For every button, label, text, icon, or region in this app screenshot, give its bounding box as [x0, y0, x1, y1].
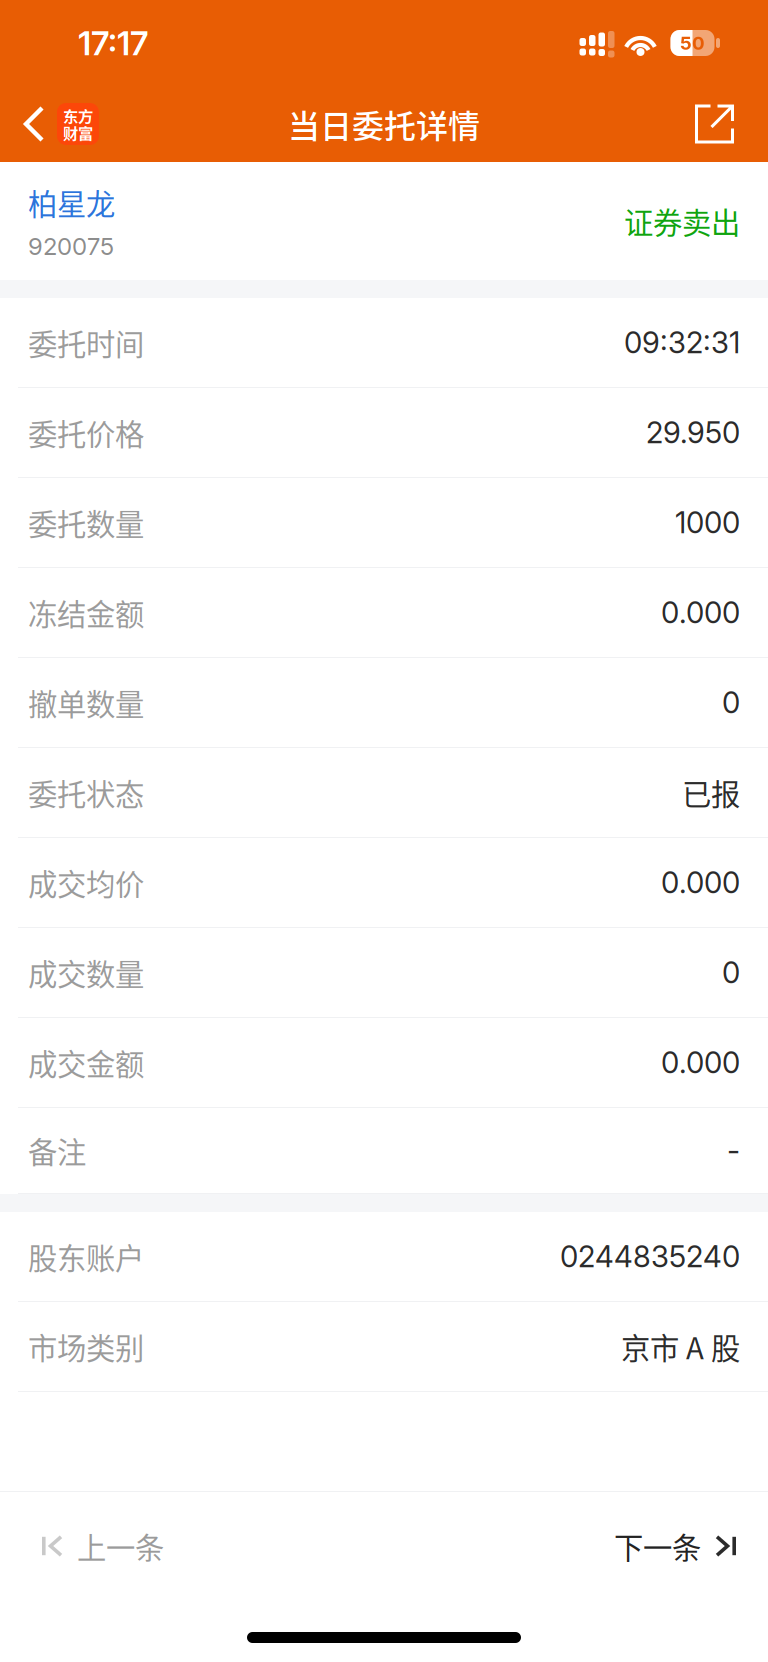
staticText: 柏星龙	[28, 181, 115, 224]
staticText: 1000	[675, 505, 740, 540]
staticText: -	[727, 1133, 740, 1168]
staticText: 备注	[28, 1129, 86, 1172]
staticText: 0	[722, 685, 740, 720]
staticText: 东方	[63, 104, 93, 127]
button[interactable]: 上一条	[0, 1492, 188, 1600]
staticText: 委托数量	[28, 501, 144, 544]
staticText: 下一条	[614, 1525, 701, 1567]
staticText: 委托状态	[28, 771, 144, 814]
staticText: 上一条	[77, 1525, 164, 1567]
staticText: 0.000	[661, 1045, 740, 1080]
staticText: 成交均价	[28, 861, 144, 904]
staticText: 股东账户	[28, 1235, 144, 1278]
staticText: 50	[680, 32, 705, 54]
staticText: 证券卖出	[624, 200, 740, 242]
staticText: 17:17	[78, 23, 148, 63]
button[interactable]: 东方	[0, 88, 113, 160]
staticText: 0	[722, 955, 740, 990]
staticText: 京市 A 股	[621, 1325, 740, 1368]
staticText: 0.000	[661, 595, 740, 630]
staticText: 财富	[63, 121, 93, 144]
staticText: 市场类别	[28, 1325, 144, 1368]
staticText: 委托时间	[28, 321, 144, 364]
staticText: 29.950	[646, 415, 740, 450]
button[interactable]: 下一条	[590, 1492, 768, 1600]
staticText: 0244835240	[560, 1239, 740, 1274]
staticText: 成交金额	[28, 1041, 144, 1084]
staticText: 0.000	[661, 865, 740, 900]
staticText: 当日委托详情	[288, 101, 480, 147]
staticText: 成交数量	[28, 951, 144, 994]
staticText: 09:32:31	[624, 325, 740, 360]
staticText: 冻结金额	[28, 591, 144, 634]
staticText: 920075	[28, 232, 114, 261]
staticText: 委托价格	[28, 411, 144, 454]
staticText: 已报	[682, 771, 740, 814]
staticText: 撤单数量	[28, 681, 144, 724]
button[interactable]: 分享	[679, 88, 768, 160]
